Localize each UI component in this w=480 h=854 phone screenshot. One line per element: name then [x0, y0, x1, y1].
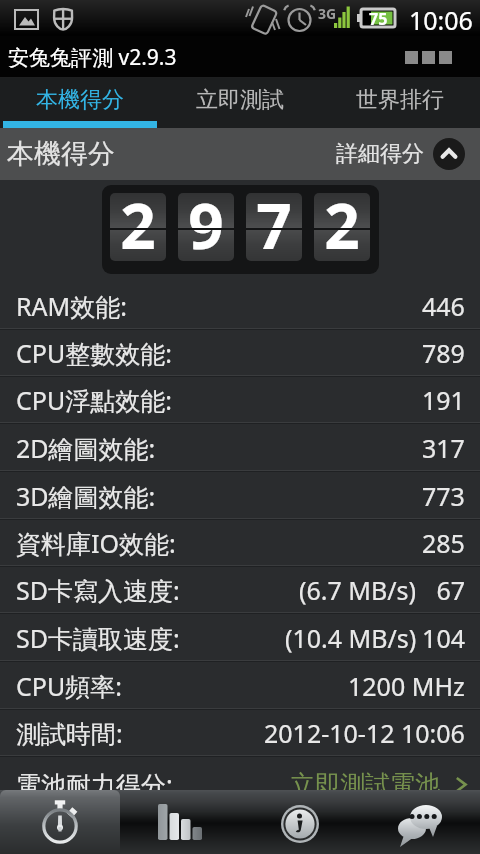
staticText: 9 — [188, 193, 224, 251]
button[interactable]: CPU浮點效能: — [0, 377, 480, 423]
staticText: 7 — [256, 193, 292, 251]
staticText: 10:06 — [409, 3, 473, 37]
staticText: 2 — [120, 193, 156, 251]
button[interactable]: CPU頻率: — [0, 662, 480, 709]
staticText: 773 — [422, 479, 465, 513]
staticText: 3G — [318, 4, 337, 23]
staticText: 2012-10-12 10:06 — [264, 716, 465, 750]
button[interactable]: 3D繪圖效能: — [0, 472, 480, 519]
button[interactable]: 立即測試 — [160, 78, 320, 128]
staticText: 2 — [324, 193, 360, 251]
staticText: 317 — [422, 431, 465, 465]
staticText: CPU頻率: — [16, 669, 122, 703]
staticText: RAM效能: — [16, 289, 127, 323]
staticText: 789 — [422, 336, 465, 370]
button[interactable]: 資料庫IO效能: — [0, 520, 480, 566]
staticText: 立即測試電池 — [290, 769, 440, 790]
staticText: 世界排行 — [356, 86, 444, 114]
button[interactable]: 測試時間: — [0, 710, 480, 756]
button[interactable]: Benchmark — [0, 790, 120, 854]
staticText: 191 — [422, 383, 465, 417]
staticText: 2D繪圖效能: — [16, 431, 156, 465]
staticText: 104 — [422, 621, 465, 655]
staticText: SD卡讀取速度: — [16, 621, 180, 655]
staticText: 446 — [422, 289, 465, 323]
staticText: 測試時間: — [16, 716, 123, 750]
staticText: 本機得分 — [36, 86, 124, 114]
button[interactable]: 2D繪圖效能: — [0, 424, 480, 471]
staticText: SD卡寫入速度: — [16, 573, 180, 607]
button[interactable]: CPU整數效能: — [0, 330, 480, 376]
button[interactable]: Feedback — [360, 790, 480, 854]
button[interactable]: 本機得分 — [0, 78, 160, 128]
staticText: CPU整數效能: — [16, 336, 172, 370]
staticText: 安兔兔評測 v2.9.3 — [8, 43, 177, 72]
staticText: 3D繪圖效能: — [16, 479, 156, 513]
staticText: 75 — [369, 8, 388, 30]
button[interactable]: SD卡寫入速度: — [0, 567, 480, 613]
button[interactable]: 電池耐力得分: — [0, 757, 480, 790]
button[interactable]: RAM效能: — [0, 282, 480, 329]
button[interactable]: SD卡讀取速度: — [0, 614, 480, 661]
staticText: 1200 MHz — [348, 669, 465, 703]
staticText: 詳細得分 — [336, 140, 424, 168]
staticText: (10.4 MB/s) — [285, 621, 417, 655]
staticText: CPU浮點效能: — [16, 383, 172, 417]
staticText: 立即測試 — [196, 86, 284, 114]
staticText: 本機得分 — [7, 137, 115, 171]
staticText: 資料庫IO效能: — [16, 526, 176, 560]
button[interactable]: 詳細得分 — [336, 138, 465, 170]
button[interactable]: More options — [405, 51, 452, 64]
button[interactable]: Scores — [120, 790, 240, 854]
staticText: (6.7 MB/s) — [299, 573, 417, 607]
staticText: 電池耐力得分: — [16, 767, 173, 790]
button[interactable]: Info — [240, 790, 360, 854]
button[interactable]: 世界排行 — [320, 78, 480, 128]
staticText: 285 — [422, 526, 465, 560]
staticText: 67 — [436, 573, 465, 607]
